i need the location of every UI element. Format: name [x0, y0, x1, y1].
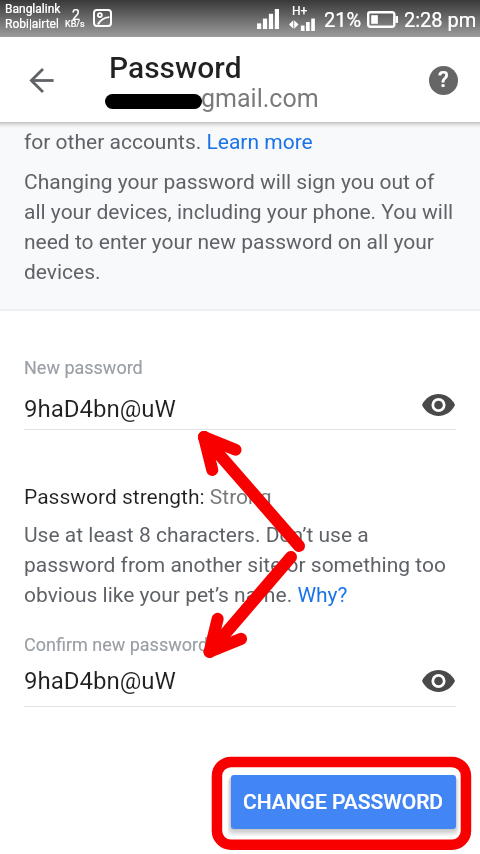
- staticText: Password strength: Strong: [24, 480, 272, 510]
- staticText: Banglalink: [5, 2, 61, 16]
- staticText: 21%: [324, 8, 362, 31]
- staticText: Password: [109, 52, 242, 85]
- staticText: gmail.com: [201, 84, 319, 113]
- staticText: CHANGE PASSWORD: [243, 790, 444, 815]
- button[interactable]: Show password: [418, 385, 458, 425]
- staticText: ?: [438, 67, 449, 93]
- staticText: Robi|airtel: [5, 17, 59, 31]
- staticText: Changing your password will sign you out…: [24, 165, 458, 285]
- staticText: Use at least 8 characters. Don’t use a p…: [24, 518, 458, 608]
- staticText: 2:28 pm: [404, 8, 477, 31]
- button[interactable]: Show password: [418, 661, 458, 701]
- staticText: 9haD4bn@uW: [24, 667, 176, 695]
- staticText: 9haD4bn@uW: [24, 395, 176, 423]
- staticText: Confirm new password: [24, 634, 209, 655]
- staticText: KB/s: [65, 19, 85, 30]
- staticText: 2: [72, 7, 80, 23]
- button[interactable]: Back: [18, 57, 65, 104]
- button[interactable]: CHANGE PASSWORD: [231, 775, 456, 829]
- staticText: H+: [292, 4, 308, 18]
- staticText: New password: [24, 357, 143, 378]
- button[interactable]: Help: [420, 57, 467, 104]
- staticText: for other accounts. Learn more: [24, 125, 313, 155]
